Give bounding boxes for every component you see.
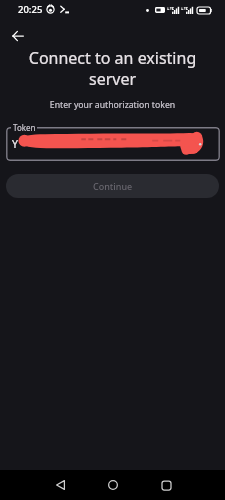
button[interactable]: Home xyxy=(95,471,131,499)
button[interactable]: Continue xyxy=(6,174,219,198)
staticText: Connect to an existing server xyxy=(24,47,201,90)
staticText: Continue xyxy=(93,180,133,192)
button[interactable]: Y xyxy=(6,127,220,161)
button[interactable]: Recent apps xyxy=(148,471,184,499)
staticText: Enter your authorization token xyxy=(0,99,225,111)
button[interactable]: Back xyxy=(42,471,78,499)
staticText: 20:25 xyxy=(18,3,43,16)
button[interactable]: Back xyxy=(5,23,31,49)
staticText: Token xyxy=(13,122,36,133)
staticText: Y xyxy=(12,137,18,151)
